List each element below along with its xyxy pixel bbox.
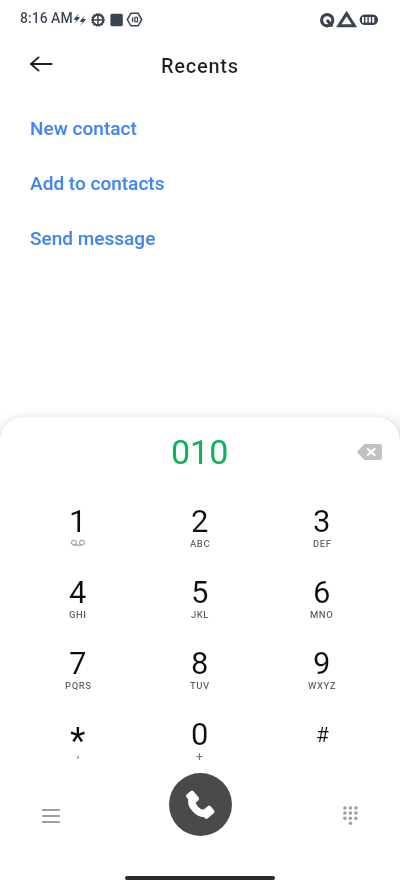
button[interactable]: 4 (17, 557, 139, 628)
staticText: New contact (30, 117, 137, 139)
staticText: TUV (190, 680, 210, 691)
button[interactable]: # (261, 699, 383, 770)
staticText: 2 (191, 503, 209, 539)
staticText: 7 (69, 645, 87, 681)
staticText: WXYZ (308, 680, 337, 691)
staticText: DEF (313, 538, 332, 549)
button[interactable]: Dialpad (329, 794, 371, 836)
button[interactable]: * (17, 699, 139, 770)
button[interactable]: Back (19, 42, 63, 86)
staticText: * (70, 720, 86, 762)
staticText: # (316, 723, 329, 748)
button[interactable]: 0 (139, 699, 261, 770)
staticText: Add to contacts (30, 172, 165, 194)
button[interactable]: 8 (139, 628, 261, 699)
staticText: MNO (310, 609, 334, 620)
button[interactable]: 6 (261, 557, 383, 628)
staticText: 9 (313, 645, 331, 681)
staticText: Recents (161, 54, 239, 77)
button[interactable]: 1 (17, 486, 139, 557)
button[interactable]: 3 (261, 486, 383, 557)
staticText: 010 (171, 432, 229, 472)
button[interactable]: 7 (17, 628, 139, 699)
staticText: Send message (30, 227, 156, 249)
button[interactable]: 5 (139, 557, 261, 628)
staticText: 8:16 AM (20, 10, 73, 26)
staticText: 4 (69, 574, 87, 610)
button[interactable]: 9 (261, 628, 383, 699)
button[interactable]: Call log (30, 795, 72, 837)
staticText: 0 (191, 716, 209, 752)
staticText: 8 (191, 645, 209, 681)
staticText: , (77, 746, 80, 760)
staticText: + (196, 750, 204, 764)
button[interactable]: Send message (0, 210, 400, 265)
button[interactable]: Call (169, 773, 232, 836)
staticText: 3 (313, 503, 331, 539)
staticText: PQRS (65, 680, 92, 691)
staticText: 6 (313, 574, 331, 610)
button[interactable]: Backspace (348, 431, 390, 473)
staticText: 1 (69, 503, 87, 539)
button[interactable]: New contact (0, 100, 400, 155)
staticText: JKL (191, 609, 210, 620)
staticText: GHI (69, 609, 87, 620)
staticText: ABC (190, 538, 211, 549)
staticText: 5 (191, 574, 209, 610)
button[interactable]: 2 (139, 486, 261, 557)
button[interactable]: Add to contacts (0, 155, 400, 210)
